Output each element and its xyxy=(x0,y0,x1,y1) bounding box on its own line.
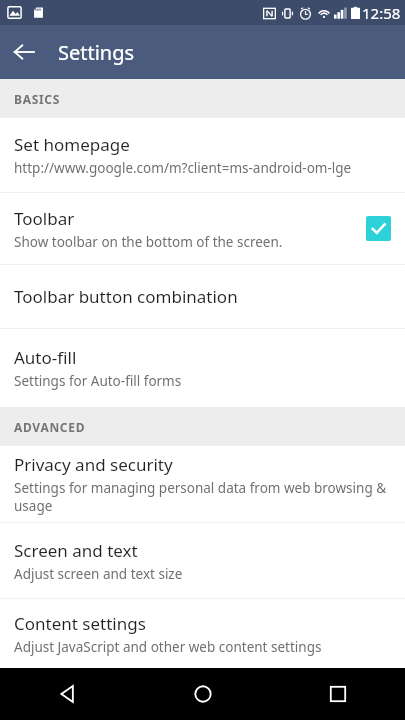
button[interactable]: Toolbar button combination xyxy=(0,265,405,328)
staticText: Settings xyxy=(58,39,135,66)
staticText: Toolbar button combination xyxy=(14,285,238,308)
button[interactable]: Content settings xyxy=(0,599,405,668)
staticText: Set homepage xyxy=(14,133,130,156)
staticText: Screen and text xyxy=(14,539,138,562)
staticText: Privacy and security xyxy=(14,453,173,476)
staticText: BASICS xyxy=(14,91,61,107)
button[interactable]: Recent apps xyxy=(270,668,405,720)
button[interactable]: Toolbar xyxy=(0,193,405,264)
staticText: Settings for managing personal data from… xyxy=(14,479,391,515)
staticText: http://www.google.com/m?client=ms-androi… xyxy=(14,159,352,177)
staticText: Adjust screen and text size xyxy=(14,565,183,583)
button[interactable]: Privacy and security xyxy=(0,446,405,522)
button[interactable]: Home xyxy=(135,668,270,720)
staticText: 12:58 xyxy=(362,3,401,23)
button[interactable]: Toolbar enabled xyxy=(366,216,391,241)
button[interactable]: Back xyxy=(0,28,48,76)
button[interactable]: Screen and text xyxy=(0,523,405,598)
staticText: Content settings xyxy=(14,612,146,635)
staticText: Show toolbar on the bottom of the screen… xyxy=(14,233,283,251)
staticText: Toolbar xyxy=(14,207,75,230)
button[interactable]: Auto-fill xyxy=(0,329,405,407)
staticText: Adjust JavaScript and other web content … xyxy=(14,638,322,656)
staticText: Auto-fill xyxy=(14,346,77,369)
staticText: Settings for Auto-fill forms xyxy=(14,372,182,390)
button[interactable]: Set homepage xyxy=(0,118,405,192)
staticText: ADVANCED xyxy=(14,419,86,435)
button[interactable]: Back xyxy=(0,668,135,720)
